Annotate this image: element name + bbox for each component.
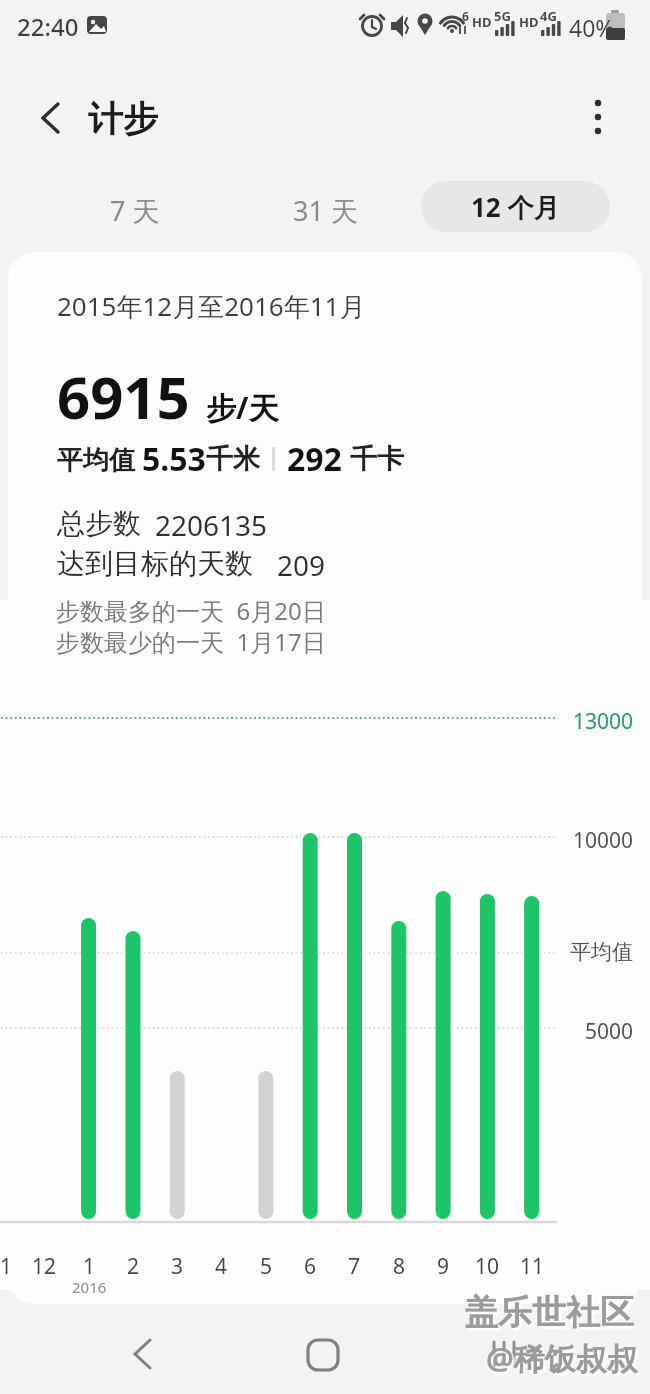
staticText: 3	[171, 1252, 184, 1281]
staticText: 总步数	[57, 506, 141, 541]
staticText: 2015年12月至2016年11月	[57, 288, 366, 324]
staticText: HD	[519, 13, 539, 31]
button[interactable]	[118, 1330, 166, 1378]
staticText: 步数最多的一天 6月20日	[56, 594, 326, 627]
staticText: 6	[462, 8, 469, 24]
button[interactable]: 31 天	[265, 190, 385, 230]
button[interactable]	[299, 1330, 347, 1378]
staticText: 步/天	[206, 387, 279, 428]
staticText: 步数最少的一天 1月17日	[56, 625, 326, 658]
staticText: 8	[393, 1252, 406, 1281]
button[interactable]	[480, 1330, 528, 1378]
staticText: 12	[32, 1252, 57, 1281]
staticText: 6	[304, 1252, 317, 1281]
staticText: 7	[348, 1252, 361, 1281]
staticText: 209	[277, 546, 326, 584]
button[interactable]	[578, 97, 618, 137]
staticText: 平均值	[570, 939, 633, 965]
staticText: 12 个月	[471, 189, 560, 225]
staticText: 1	[83, 1252, 96, 1281]
staticText: 5G	[494, 7, 511, 25]
staticText: 6915	[57, 357, 190, 436]
staticText: 10	[475, 1252, 500, 1281]
staticText: 31 天	[293, 192, 358, 229]
staticText: 11	[520, 1252, 545, 1281]
button[interactable]	[30, 98, 70, 138]
staticText: 盖乐世社区	[464, 1291, 634, 1334]
staticText: @稀饭叔叔	[486, 1337, 638, 1379]
staticText: 4	[215, 1252, 228, 1281]
staticText: 5.53	[142, 437, 206, 481]
staticText: 40%	[569, 12, 615, 43]
staticText: 10000	[573, 826, 634, 855]
staticText: HD	[472, 13, 492, 31]
staticText: 292	[287, 437, 342, 481]
staticText: 13000	[573, 707, 634, 736]
button[interactable]: 7 天	[75, 190, 195, 230]
staticText: 2206135	[155, 506, 268, 544]
staticText: 4G	[540, 7, 557, 25]
staticText: 2	[127, 1252, 140, 1281]
staticText: 平均值	[57, 441, 142, 477]
staticText: 7 天	[110, 192, 160, 229]
staticText: 计步	[88, 97, 158, 141]
staticText: 5	[260, 1252, 273, 1281]
staticText: 千卡	[350, 442, 404, 476]
staticText: 22:40	[17, 10, 79, 43]
staticText: 2016	[72, 1277, 107, 1297]
staticText: 达到目标的天数	[57, 546, 253, 581]
staticText: 11	[0, 1252, 13, 1281]
staticText: 9	[437, 1252, 450, 1281]
staticText: 5000	[585, 1017, 634, 1046]
staticText: 千米	[206, 442, 260, 476]
button[interactable]: 12 个月	[421, 181, 610, 232]
